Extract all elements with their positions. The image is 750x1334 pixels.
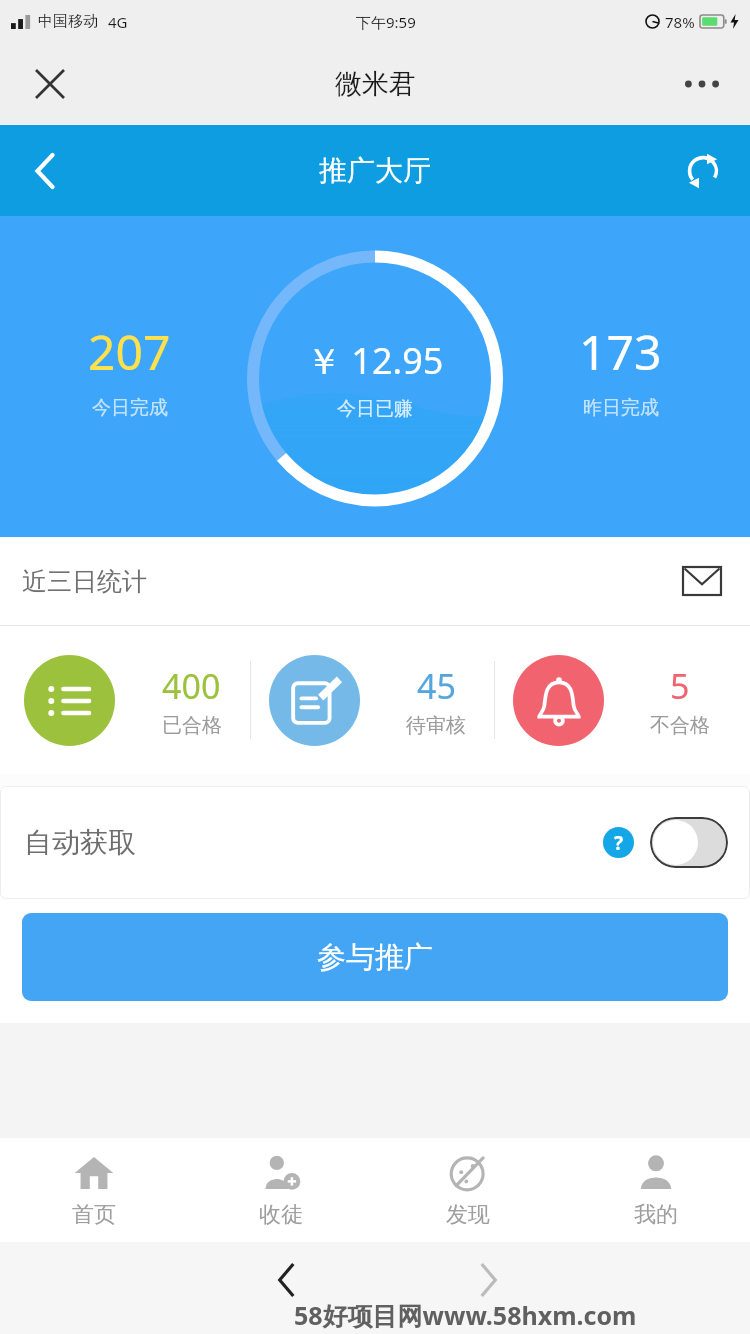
button[interactable]	[513, 655, 604, 746]
button[interactable]: 我的	[562, 1138, 750, 1242]
button[interactable]: Help	[603, 827, 634, 858]
staticText: 4G	[108, 12, 128, 32]
button[interactable]: 收徒	[187, 1138, 374, 1242]
staticText: 中国移动	[38, 12, 98, 31]
staticText: 自动获取	[24, 825, 136, 860]
staticText: ￥ 12.95	[306, 336, 444, 385]
staticText: 不合格	[650, 713, 710, 738]
staticText: 收徒	[259, 1201, 303, 1229]
button[interactable]: Navigate forward	[452, 1242, 524, 1334]
staticText: 首页	[72, 1201, 116, 1229]
staticText: 207	[88, 319, 171, 384]
button[interactable]	[269, 655, 360, 746]
staticText: 发现	[446, 1201, 490, 1229]
staticText: 今日已赚	[337, 397, 413, 421]
staticText: 我的	[634, 1201, 678, 1229]
staticText: 待审核	[406, 713, 466, 738]
staticText: 400	[162, 663, 221, 709]
staticText: 近三日统计	[22, 566, 147, 597]
staticText: 昨日完成	[583, 396, 659, 420]
button[interactable]: 发现	[374, 1138, 562, 1242]
staticText: 5	[670, 663, 690, 709]
button[interactable]: Close	[22, 56, 78, 112]
staticText: 45	[417, 663, 456, 709]
button[interactable]	[24, 655, 115, 746]
button[interactable]: 自动获取	[0, 786, 750, 899]
staticText: 参与推广	[317, 939, 433, 976]
button[interactable]: Navigate back	[250, 1242, 322, 1334]
staticText: 微米君	[335, 67, 416, 101]
button[interactable]: 参与推广	[22, 913, 728, 1001]
staticText: 58好项目网www.58hxm.com	[294, 1298, 637, 1332]
button[interactable]: Refresh	[674, 142, 732, 200]
button[interactable]: More options	[674, 56, 730, 112]
staticText: ?	[614, 830, 624, 856]
button[interactable]: Back	[16, 142, 74, 200]
button[interactable]: Auto fetch toggle	[650, 817, 728, 868]
staticText: 78%	[665, 12, 695, 32]
staticText: 今日完成	[92, 396, 168, 420]
staticText: 已合格	[162, 713, 222, 738]
staticText: 推广大厅	[319, 153, 431, 188]
staticText: 173	[579, 319, 662, 384]
staticText: 下午9:59	[356, 12, 416, 32]
button[interactable]: Messages	[676, 555, 728, 607]
button[interactable]: 首页	[0, 1138, 187, 1242]
